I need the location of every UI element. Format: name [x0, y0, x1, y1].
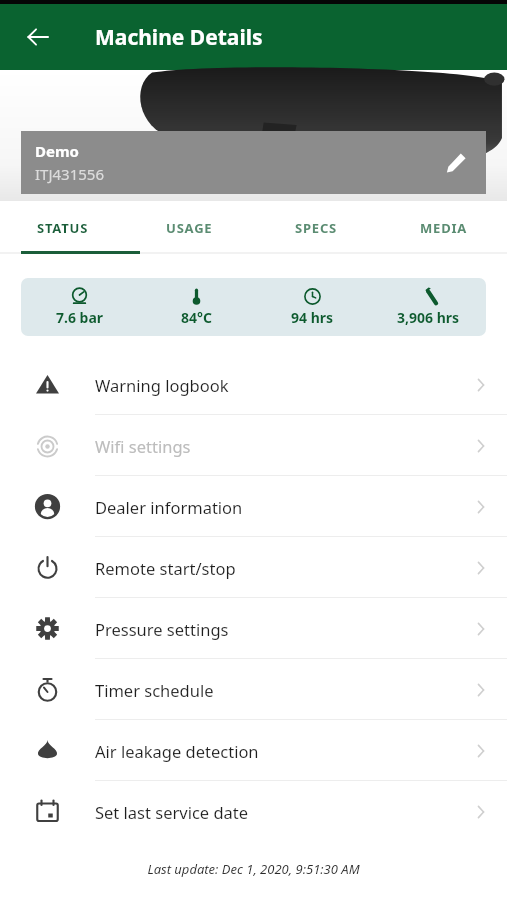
button[interactable]: Wifi settings [0, 415, 507, 476]
staticText: 7.6 bar [56, 308, 104, 327]
staticText: USAGE [166, 219, 213, 237]
staticText: 3,906 hrs [397, 308, 460, 327]
button[interactable]: Remote start/stop [0, 537, 507, 598]
staticText: SPECS [295, 219, 338, 237]
staticText: Last update: Dec 1, 2020, 9:51:30 AM [0, 860, 507, 878]
staticText: Set last service date [95, 801, 249, 823]
staticText: Dealer information [95, 496, 243, 518]
button[interactable]: Warning logbook [0, 354, 507, 415]
button[interactable]: Pressure settings [0, 598, 507, 659]
staticText: Wifi settings [95, 435, 191, 457]
button[interactable]: Edit [434, 141, 478, 185]
button[interactable]: Set last service date [0, 781, 507, 842]
button[interactable]: SPECS [253, 201, 380, 254]
button[interactable]: MEDIA [380, 201, 507, 254]
button[interactable]: STATUS [0, 201, 126, 254]
staticText: Timer schedule [95, 679, 214, 701]
button[interactable]: 7.6 bar [21, 278, 486, 336]
staticText: STATUS [37, 219, 89, 237]
staticText: ITJ431556 [35, 164, 105, 184]
staticText: Warning logbook [95, 374, 229, 396]
staticText: 84°C [181, 308, 212, 327]
staticText: Pressure settings [95, 618, 229, 640]
staticText: Demo [35, 141, 79, 161]
button[interactable]: Timer schedule [0, 659, 507, 720]
button[interactable]: Back [14, 13, 62, 61]
staticText: 94 hrs [291, 308, 334, 327]
staticText: Remote start/stop [95, 557, 236, 579]
staticText: Air leakage detection [95, 740, 259, 762]
button[interactable]: USAGE [126, 201, 253, 254]
button[interactable]: Demo [21, 131, 486, 194]
button[interactable]: Air leakage detection [0, 720, 507, 781]
staticText: Machine Details [95, 23, 263, 52]
button[interactable]: Dealer information [0, 476, 507, 537]
staticText: MEDIA [420, 219, 468, 237]
